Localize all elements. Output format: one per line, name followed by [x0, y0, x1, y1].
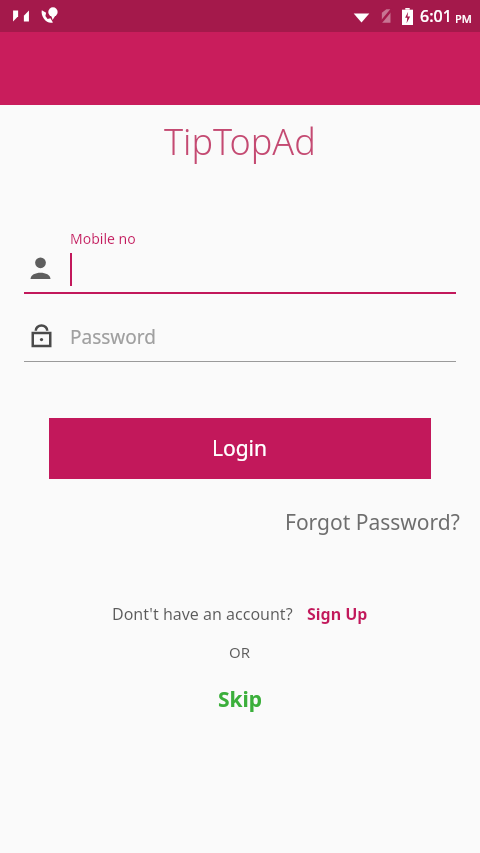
staticText: 6:01 [420, 5, 452, 27]
button[interactable]: Login [49, 418, 431, 479]
staticText: Skip [218, 685, 263, 714]
button[interactable]: Password [0, 316, 480, 366]
staticText: PM [455, 11, 472, 26]
staticText: Mobile no [70, 229, 136, 248]
staticText: Sign Up [307, 603, 368, 625]
button[interactable]: Forgot Password? [285, 504, 480, 541]
button[interactable]: Mobile no [0, 221, 480, 297]
staticText: Password [70, 324, 156, 350]
staticText: TipTopAd [164, 117, 316, 166]
staticText: Forgot Password? [285, 508, 460, 537]
button[interactable]: Sign Up [307, 603, 368, 625]
staticText: Login [212, 434, 268, 463]
staticText: OR [229, 642, 251, 662]
button[interactable]: Skip [218, 685, 263, 714]
staticText: Dont't have an account? [112, 603, 293, 625]
